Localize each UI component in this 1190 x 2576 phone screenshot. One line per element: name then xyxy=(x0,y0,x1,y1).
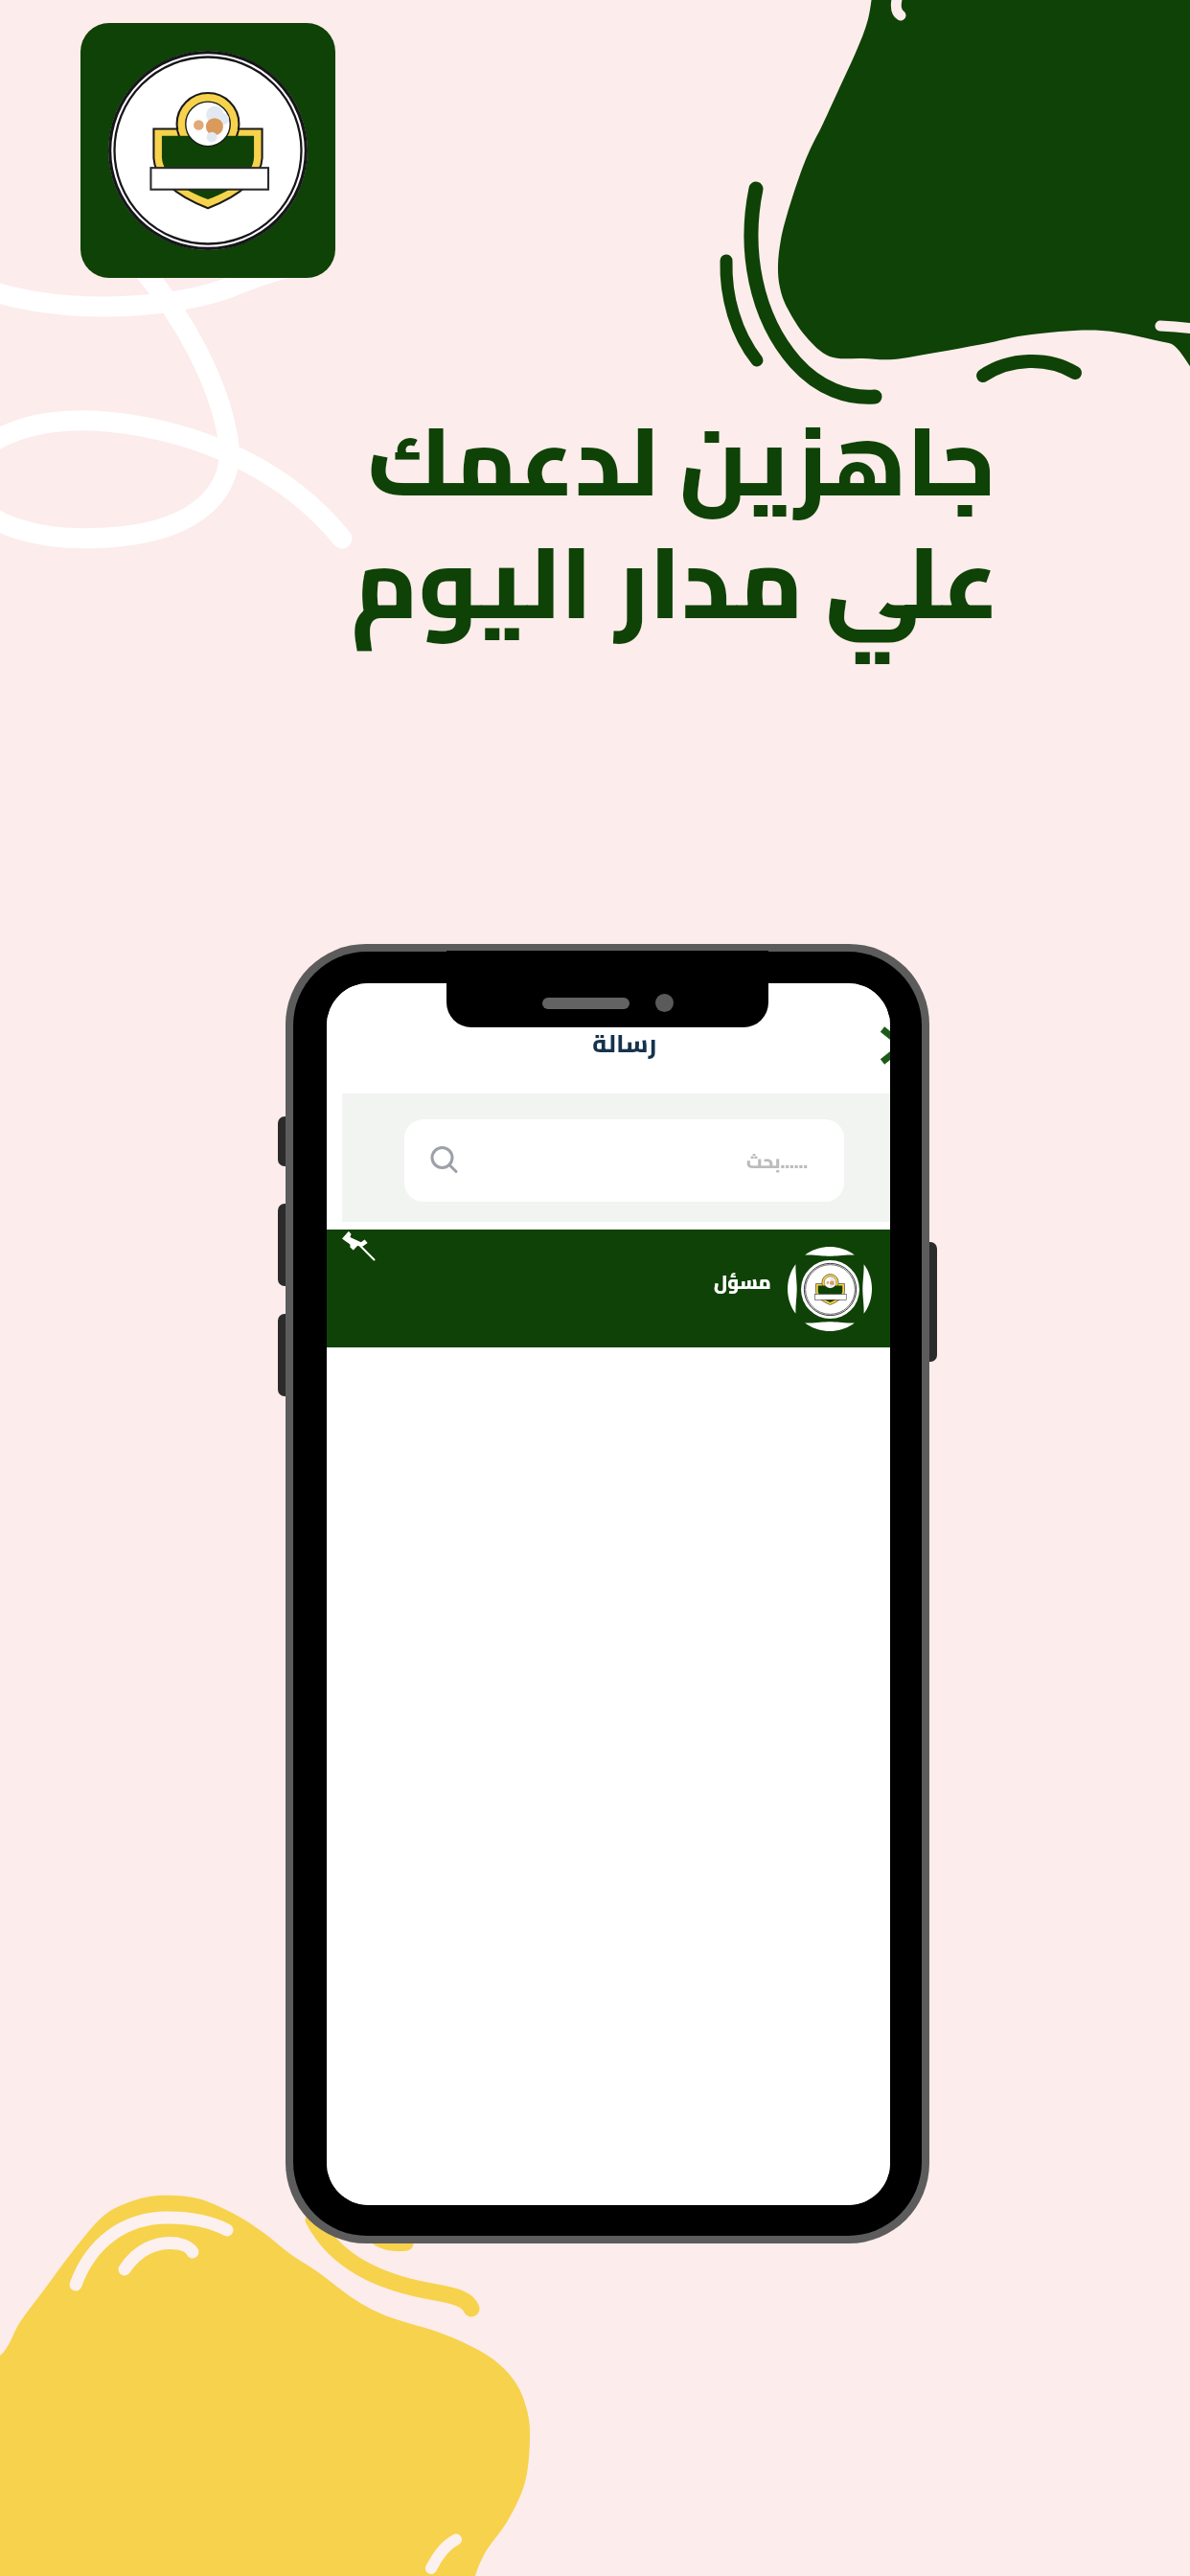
button[interactable]: مسؤل xyxy=(327,1230,890,1347)
staticText: بحث...... xyxy=(746,1144,809,1179)
staticText: مسؤل xyxy=(714,1264,771,1299)
staticText: رسالة xyxy=(592,1020,657,1067)
button[interactable]: Abu Hanafy logo xyxy=(80,23,335,278)
staticText: علي مدار اليوم xyxy=(351,488,999,675)
button[interactable]: بحث...... xyxy=(404,1119,844,1202)
staticText: جاهزين لدعمك xyxy=(367,372,995,550)
